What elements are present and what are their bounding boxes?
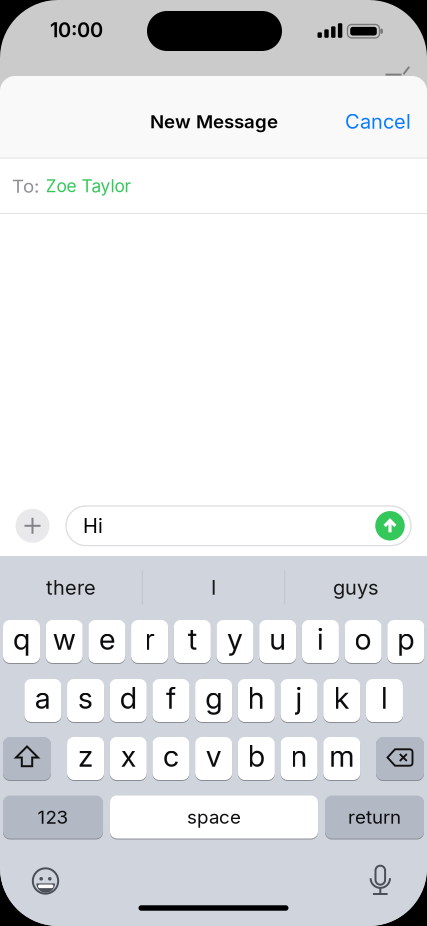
- staticText: z: [78, 739, 93, 773]
- button[interactable]: 123: [3, 794, 103, 839]
- button[interactable]: s: [67, 678, 104, 723]
- staticText: i: [317, 622, 324, 656]
- button[interactable]: d: [110, 678, 147, 723]
- staticText: space: [187, 806, 241, 828]
- staticText: k: [334, 681, 350, 715]
- button[interactable]: e: [88, 619, 125, 664]
- button[interactable]: i: [302, 619, 339, 664]
- staticText: l: [381, 681, 388, 715]
- button[interactable]: y: [216, 619, 253, 664]
- staticText: Zoe Taylor: [45, 176, 131, 196]
- button[interactable]: m: [323, 736, 360, 781]
- button[interactable]: z: [67, 736, 104, 781]
- staticText: o: [355, 622, 372, 656]
- staticText: d: [120, 681, 137, 715]
- button[interactable]: r: [131, 619, 168, 664]
- button[interactable]: n: [281, 736, 318, 781]
- button[interactable]: space: [110, 794, 318, 839]
- staticText: To:: [12, 175, 39, 197]
- button[interactable]: j: [281, 678, 318, 723]
- staticText: guys: [333, 576, 378, 599]
- button[interactable]: guys: [290, 562, 420, 612]
- button[interactable]: k: [323, 678, 360, 723]
- button[interactable]: f: [152, 678, 189, 723]
- staticText: x: [121, 739, 136, 773]
- staticText: y: [227, 622, 243, 656]
- button[interactable]: b: [238, 736, 275, 781]
- staticText: New Message: [150, 110, 278, 132]
- button[interactable]: u: [259, 619, 296, 664]
- staticText: 123: [37, 806, 68, 828]
- button[interactable]: [376, 736, 424, 781]
- staticText: Hi: [83, 514, 103, 538]
- staticText: s: [78, 681, 93, 715]
- button[interactable]: [375, 511, 405, 540]
- staticText: j: [296, 681, 303, 715]
- button[interactable]: c: [152, 736, 189, 781]
- button[interactable]: p: [387, 619, 424, 664]
- button[interactable]: there: [6, 562, 136, 612]
- button[interactable]: return: [325, 794, 424, 839]
- staticText: v: [206, 739, 222, 773]
- staticText: t: [188, 622, 197, 656]
- button[interactable]: a: [24, 678, 61, 723]
- button[interactable]: [32, 868, 58, 894]
- staticText: h: [248, 681, 265, 715]
- staticText: f: [166, 681, 176, 715]
- staticText: r: [145, 622, 155, 656]
- staticText: c: [163, 739, 179, 773]
- button[interactable]: q: [3, 619, 40, 664]
- button[interactable]: Cancel: [345, 110, 411, 133]
- staticText: there: [46, 576, 96, 599]
- button[interactable]: l: [366, 678, 403, 723]
- staticText: q: [13, 622, 30, 656]
- staticText: n: [291, 739, 308, 773]
- button[interactable]: o: [345, 619, 382, 664]
- staticText: g: [205, 681, 222, 715]
- button[interactable]: [366, 863, 394, 897]
- button[interactable]: Hi: [66, 506, 411, 545]
- staticText: m: [329, 739, 354, 773]
- button[interactable]: w: [46, 619, 83, 664]
- staticText: u: [269, 622, 286, 656]
- staticText: p: [397, 622, 414, 656]
- staticText: Cancel: [345, 110, 411, 133]
- button[interactable]: Zoe Taylor: [45, 176, 131, 196]
- staticText: I: [211, 576, 216, 599]
- staticText: 10:00: [50, 18, 103, 42]
- button[interactable]: I: [148, 562, 278, 612]
- staticText: e: [99, 622, 115, 656]
- button[interactable]: g: [195, 678, 232, 723]
- staticText: w: [53, 622, 76, 656]
- button[interactable]: t: [174, 619, 211, 664]
- button[interactable]: x: [110, 736, 147, 781]
- staticText: return: [348, 806, 401, 828]
- staticText: a: [35, 681, 51, 715]
- button[interactable]: h: [238, 678, 275, 723]
- button[interactable]: [3, 736, 51, 781]
- staticText: b: [248, 739, 265, 773]
- button[interactable]: v: [195, 736, 232, 781]
- button[interactable]: [15, 509, 49, 543]
